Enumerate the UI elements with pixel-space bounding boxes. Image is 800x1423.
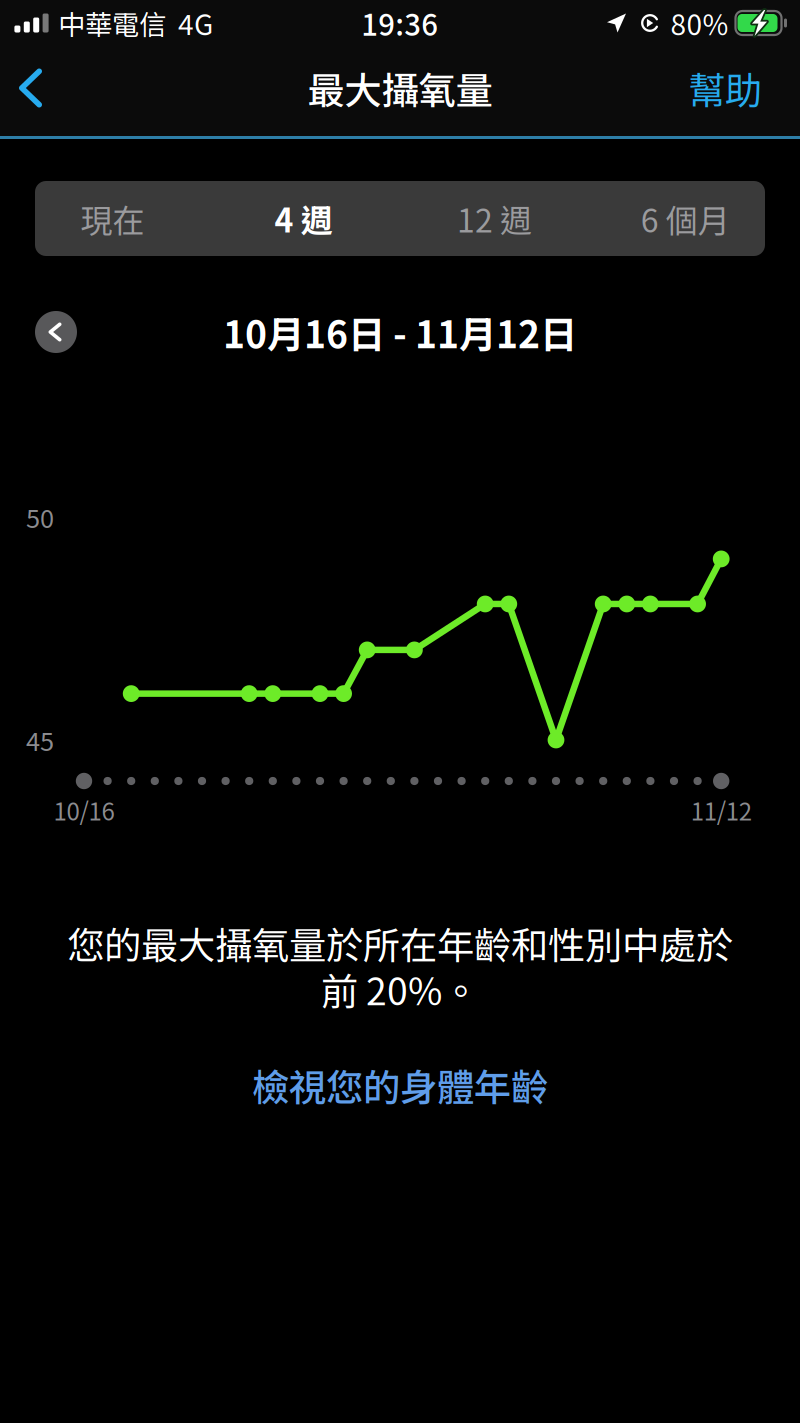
button[interactable]: 檢視您的身體年齡	[220, 1054, 580, 1116]
staticText: 12 週	[457, 195, 532, 242]
staticText: 19:36	[361, 2, 438, 44]
button[interactable]: 12 週	[406, 181, 582, 256]
staticText: 中華電信	[58, 3, 166, 43]
button[interactable]: 返回	[0, 50, 68, 125]
staticText: 11/12	[691, 793, 752, 827]
staticText: 6 個月	[641, 195, 730, 242]
staticText: 4G	[178, 3, 213, 43]
staticText: 45	[26, 722, 54, 758]
button[interactable]: 4 週	[215, 181, 391, 256]
staticText: 您的最大攝氧量於所在年齡和性別中處於	[67, 916, 733, 970]
button[interactable]: 幫助	[662, 41, 800, 135]
staticText: 最大攝氧量	[307, 61, 492, 115]
button[interactable]: 上一段時間	[26, 302, 86, 362]
staticText: 10月16日 - 11月12日	[223, 305, 577, 359]
staticText: 80%	[670, 3, 728, 43]
button[interactable]: 6 個月	[597, 181, 773, 256]
staticText: 50	[26, 499, 54, 535]
staticText: 10/16	[53, 793, 114, 827]
staticText: 前 20%。	[321, 962, 479, 1016]
staticText: 幫助	[688, 61, 762, 115]
staticText: 現在	[81, 195, 145, 242]
staticText: 檢視您的身體年齡	[252, 1058, 548, 1112]
button[interactable]: 現在	[25, 181, 201, 256]
staticText: 4 週	[274, 195, 332, 242]
